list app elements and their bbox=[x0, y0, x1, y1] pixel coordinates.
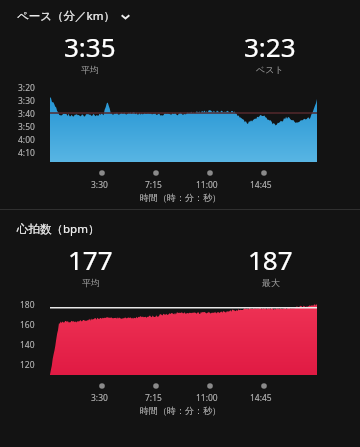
staticText: 140 bbox=[20, 339, 35, 351]
staticText: 3:50 bbox=[18, 121, 35, 133]
staticText: 7:15 bbox=[145, 179, 162, 191]
staticText: 177 bbox=[68, 242, 113, 277]
staticText: 最大 bbox=[262, 277, 280, 288]
staticText: 160 bbox=[20, 319, 35, 331]
staticText: 11:00 bbox=[196, 179, 218, 191]
staticText: ベスト bbox=[256, 64, 284, 75]
staticText: 心拍数（bpm） bbox=[17, 221, 100, 237]
staticText: 3:30 bbox=[18, 95, 35, 107]
staticText: 120 bbox=[20, 359, 35, 371]
staticText: 3:30 bbox=[91, 179, 108, 191]
staticText: 14:45 bbox=[250, 179, 272, 191]
staticText: 11:00 bbox=[196, 392, 218, 404]
staticText: 3:30 bbox=[91, 392, 108, 404]
staticText: 平均 bbox=[81, 64, 99, 75]
staticText: 187 bbox=[248, 242, 293, 277]
staticText: 3:23 bbox=[244, 29, 296, 64]
staticText: 4:00 bbox=[18, 134, 35, 146]
staticText: 時間（時：分：秒） bbox=[140, 192, 221, 203]
staticText: 平均 bbox=[82, 277, 100, 288]
staticText: 7:15 bbox=[145, 392, 162, 404]
staticText: 3:20 bbox=[18, 82, 35, 94]
staticText: 時間（時：分：秒） bbox=[140, 405, 221, 416]
button[interactable]: 心拍数（bpm） bbox=[17, 221, 100, 237]
staticText: ペース（分／km） bbox=[17, 8, 115, 24]
staticText: 180 bbox=[20, 299, 35, 311]
staticText: 4:10 bbox=[18, 147, 35, 159]
staticText: 14:45 bbox=[250, 392, 272, 404]
staticText: 3:35 bbox=[64, 29, 116, 64]
button[interactable]: ペース単位を変更 bbox=[17, 8, 343, 24]
staticText: 3:40 bbox=[18, 108, 35, 120]
